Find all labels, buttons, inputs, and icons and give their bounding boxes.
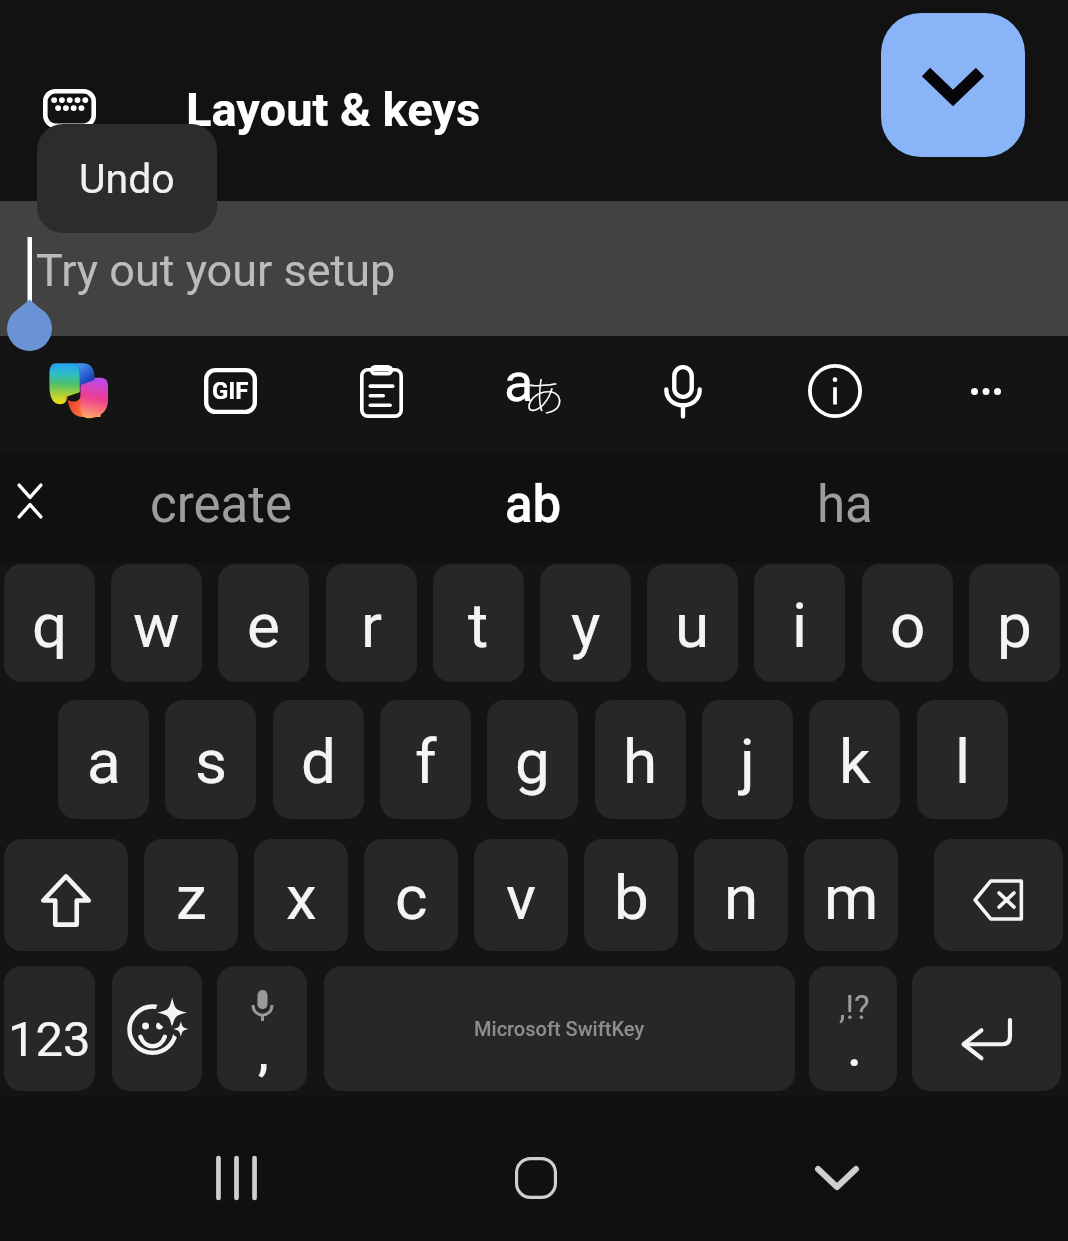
button[interactable]: GIF (172, 332, 288, 450)
button[interactable]: u (647, 564, 738, 682)
staticText: f (415, 725, 437, 798)
button[interactable]: e (218, 564, 309, 682)
staticText: i (792, 589, 808, 662)
button[interactable]: Keyboard layout (20, 70, 118, 146)
button[interactable]: Backspace (934, 839, 1063, 951)
button[interactable]: f (380, 700, 471, 819)
staticText: o (890, 589, 926, 662)
button[interactable]: Back (777, 1118, 897, 1238)
button[interactable]: x (254, 839, 348, 951)
button[interactable]: Copilot (19, 332, 135, 450)
staticText: m (824, 861, 879, 934)
button[interactable]: k (809, 700, 900, 819)
staticText: w (133, 589, 180, 662)
staticText: v (506, 861, 537, 934)
staticText: r (361, 589, 383, 662)
staticText: Microsoft SwiftKey (474, 1017, 645, 1040)
staticText: ha (817, 475, 873, 535)
button[interactable]: ha (690, 454, 1000, 562)
button[interactable]: Home (476, 1118, 596, 1238)
button[interactable]: c (364, 839, 458, 951)
button[interactable]: d (273, 700, 364, 819)
button[interactable]: l (917, 700, 1008, 819)
button[interactable]: g (487, 700, 578, 819)
staticText: あ (523, 363, 566, 415)
staticText: ,!? (839, 988, 870, 1027)
button[interactable]: Voice input (625, 332, 741, 450)
staticText: d (301, 725, 336, 798)
button[interactable]: Undo (37, 124, 217, 233)
button[interactable]: ab (378, 454, 688, 562)
button[interactable]: t (433, 564, 524, 682)
button[interactable]: h (595, 700, 686, 819)
staticText: . (848, 1025, 861, 1077)
button[interactable]: i (754, 564, 845, 682)
button[interactable]: o (862, 564, 953, 682)
staticText: create (150, 475, 293, 535)
button[interactable]: r (326, 564, 417, 682)
staticText: u (675, 589, 710, 662)
button[interactable]: v (474, 839, 568, 951)
staticText: h (623, 725, 658, 798)
staticText: p (997, 589, 1032, 662)
staticText: b (614, 861, 649, 934)
staticText: g (515, 725, 550, 798)
staticText: 123 (8, 1011, 91, 1068)
staticText: s (195, 725, 227, 798)
button[interactable]: b (584, 839, 678, 951)
button[interactable]: Info (777, 332, 893, 450)
button[interactable]: Collapse keyboard (881, 13, 1025, 157)
button[interactable]: s (165, 700, 256, 819)
staticText: Try out your setup (36, 244, 396, 297)
button[interactable]: q (4, 564, 95, 682)
staticText: t (468, 589, 489, 662)
button[interactable]: Space (324, 966, 795, 1091)
staticText: c (395, 861, 428, 934)
staticText: Undo (79, 155, 175, 203)
button[interactable]: z (144, 839, 238, 951)
button[interactable]: Close predictions (0, 454, 66, 562)
staticText: l (955, 725, 971, 798)
button[interactable]: n (694, 839, 788, 951)
button[interactable]: Translate (475, 332, 591, 450)
button[interactable]: p (969, 564, 1060, 682)
staticText: Layout & keys (186, 82, 481, 137)
staticText: e (247, 589, 280, 662)
staticText: y (571, 589, 601, 662)
staticText: k (839, 725, 871, 798)
staticText: n (724, 861, 759, 934)
staticText: a (504, 351, 534, 403)
staticText: , (258, 1028, 269, 1080)
button[interactable]: Shift (4, 839, 128, 951)
button[interactable]: Numbers and symbols (4, 966, 95, 1091)
button[interactable]: Clipboard (323, 332, 439, 450)
button[interactable]: Enter (912, 966, 1061, 1091)
button[interactable]: create (66, 454, 376, 562)
button[interactable]: Period (809, 966, 897, 1091)
button[interactable]: y (540, 564, 631, 682)
staticText: z (176, 861, 207, 934)
button[interactable]: j (702, 700, 793, 819)
staticText: ab (505, 475, 562, 535)
button[interactable]: Emoji (112, 966, 202, 1091)
button[interactable]: a (58, 700, 149, 819)
staticText: GIF (212, 377, 249, 405)
button[interactable]: Recents (176, 1118, 296, 1238)
button[interactable]: m (804, 839, 898, 951)
staticText: a (87, 725, 121, 798)
staticText: q (32, 589, 68, 662)
button[interactable]: w (111, 564, 202, 682)
staticText: x (286, 861, 317, 934)
staticText: j (740, 725, 755, 798)
button[interactable]: More options (928, 332, 1044, 450)
button[interactable]: Comma, voice input (217, 966, 307, 1091)
